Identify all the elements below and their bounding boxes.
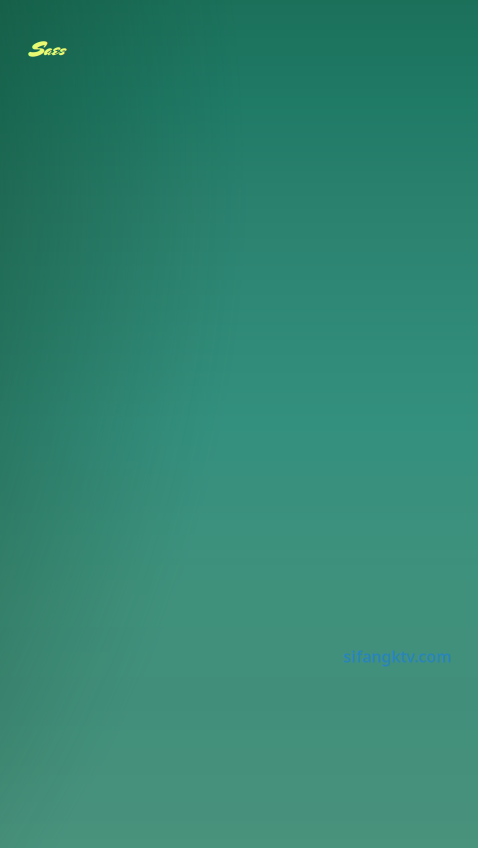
- button[interactable]: Saes: [30, 36, 64, 63]
- staticText: sifangktv.com: [343, 646, 451, 667]
- staticText: Saes: [30, 36, 64, 63]
